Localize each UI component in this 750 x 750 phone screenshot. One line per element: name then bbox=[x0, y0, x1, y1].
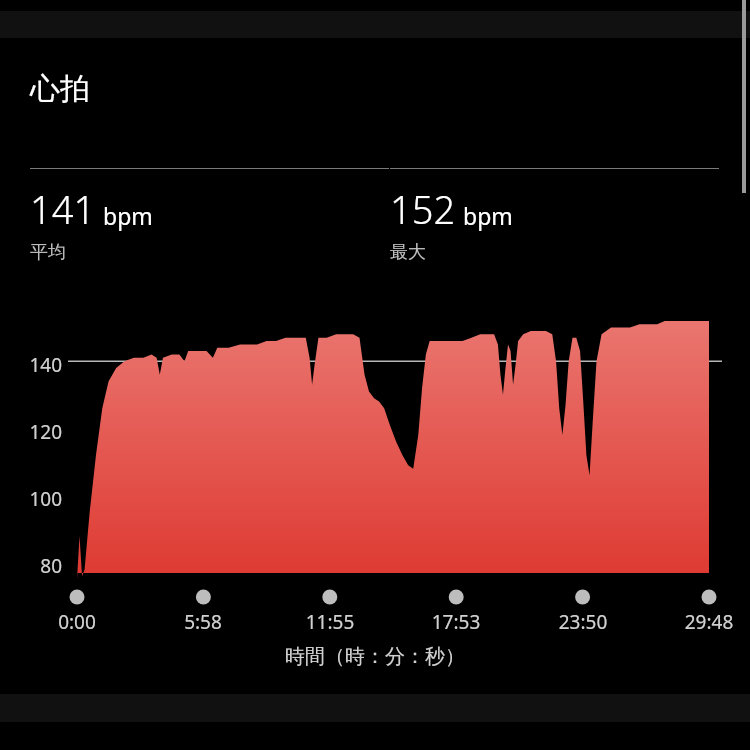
staticText: 120 bbox=[0, 419, 62, 445]
staticText: 29:48 bbox=[659, 609, 750, 635]
button[interactable]: 141 bbox=[30, 168, 390, 264]
staticText: 11:55 bbox=[280, 609, 380, 635]
button[interactable]: 152 bbox=[390, 168, 720, 264]
staticText: bpm bbox=[463, 200, 513, 231]
staticText: bpm bbox=[103, 200, 153, 231]
staticText: 5:58 bbox=[153, 609, 253, 635]
staticText: 100 bbox=[0, 486, 62, 512]
staticText: 140 bbox=[0, 352, 62, 378]
staticText: 平均 bbox=[30, 241, 66, 264]
staticText: 80 bbox=[0, 553, 62, 579]
staticText: 時間（時：分：秒） bbox=[0, 644, 750, 669]
staticText: 141 bbox=[30, 183, 96, 235]
staticText: 最大 bbox=[390, 241, 426, 264]
staticText: 23:50 bbox=[533, 609, 633, 635]
staticText: 17:53 bbox=[406, 609, 506, 635]
staticText: 152 bbox=[390, 183, 456, 235]
button[interactable]: 心拍 bbox=[30, 70, 90, 108]
button[interactable]: Heart rate chart bbox=[0, 0, 750, 750]
staticText: 0:00 bbox=[27, 609, 127, 635]
